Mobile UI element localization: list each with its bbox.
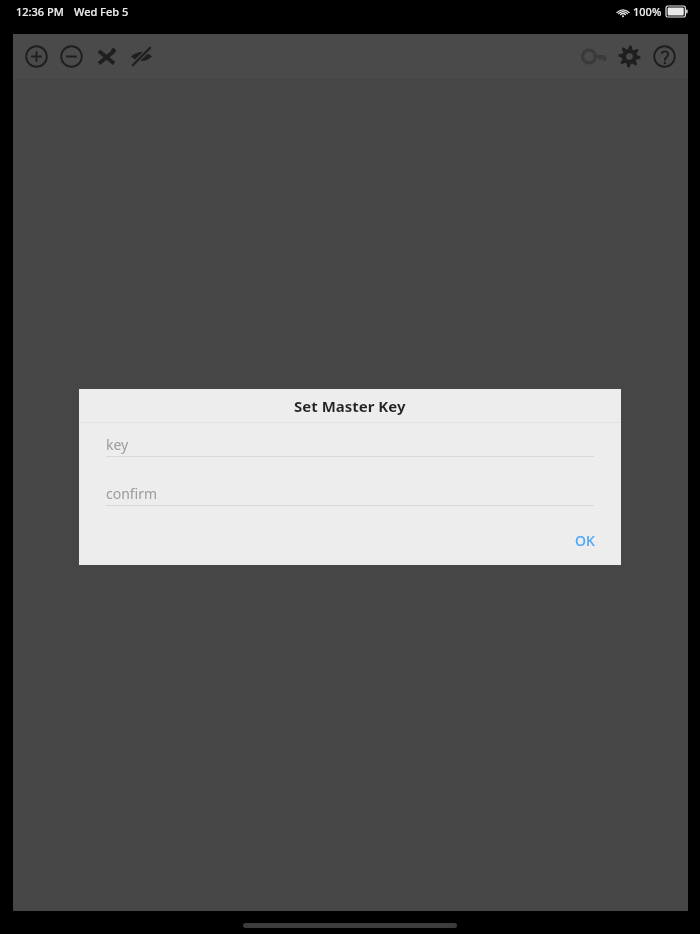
button[interactable]: Master key [577,39,612,74]
staticText: Wed Feb 5 [74,4,129,19]
button[interactable]: Settings [612,39,647,74]
button[interactable]: Add [19,39,54,74]
button[interactable]: Hide [124,39,159,74]
button[interactable]: key [106,433,594,457]
staticText: confirm [106,484,158,503]
staticText: key [106,435,129,454]
button[interactable]: confirm [106,482,594,506]
button[interactable]: Remove [54,39,89,74]
staticText: 12:36 PM [16,4,64,19]
button[interactable]: Shuffle off [89,39,124,74]
staticText: Set Master Key [294,396,406,416]
button[interactable]: OK [561,524,609,557]
staticText: 100% [633,4,662,19]
button[interactable]: Help [647,39,682,74]
staticText: OK [575,531,595,550]
